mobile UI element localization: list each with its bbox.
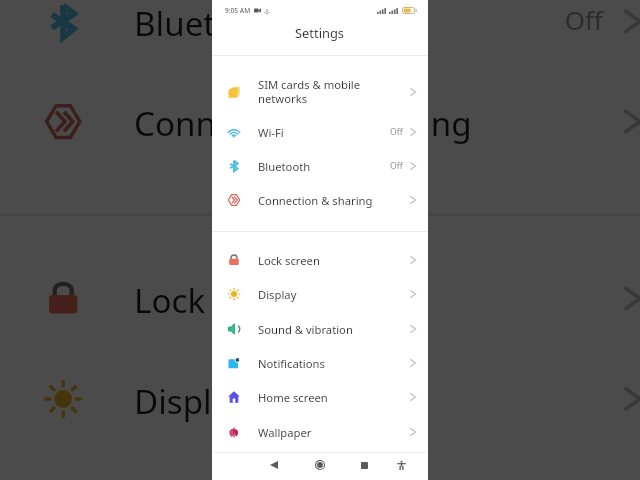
button[interactable]: Notifications [212,346,428,380]
button[interactable]: Lock screen [0,248,640,349]
button[interactable]: Connection & sharing [0,71,640,172]
button[interactable]: SIM cards & mobile networks [212,68,428,115]
button[interactable]: Display [212,277,428,311]
staticText: Off [390,160,403,172]
staticText: Wallpaper [258,425,312,440]
staticText: Sound & vibration [258,322,353,337]
button[interactable]: Home [308,453,332,477]
button[interactable]: Accessibility [389,453,413,477]
staticText: Display [258,287,297,302]
button[interactable]: Sound & vibration [0,452,640,480]
button[interactable]: Back [262,453,286,477]
staticText: Notifications [258,356,325,371]
staticText: Bluetooth [134,1,290,45]
button[interactable]: Sound & vibration [212,312,428,346]
staticText: Wi-Fi [258,125,284,140]
button[interactable]: Recent apps [352,453,376,477]
button[interactable]: Lock screen [212,243,428,277]
staticText: Bluetooth [258,159,311,174]
button[interactable]: Wi-Fi [212,115,428,149]
staticText: 9:05 AM [225,6,251,15]
button[interactable]: Home screen [212,380,428,414]
staticText: SIM cards & mobile networks [258,77,361,106]
button[interactable]: Wallpaper [212,415,428,449]
button[interactable]: Bluetooth [212,149,428,183]
staticText: Display [134,378,249,423]
staticText: Settings [295,24,345,42]
button[interactable]: Bluetooth [0,0,640,71]
staticText: Lock screen [258,253,320,268]
staticText: Home screen [258,390,328,405]
staticText: Off [390,126,403,138]
button[interactable]: Display [0,349,640,449]
staticText: Connection & sharing [134,101,473,145]
button[interactable]: Connection & sharing [212,183,428,217]
staticText: Connection & sharing [258,193,373,208]
staticText: Off [565,4,603,39]
staticText: Lock screen [134,278,317,322]
